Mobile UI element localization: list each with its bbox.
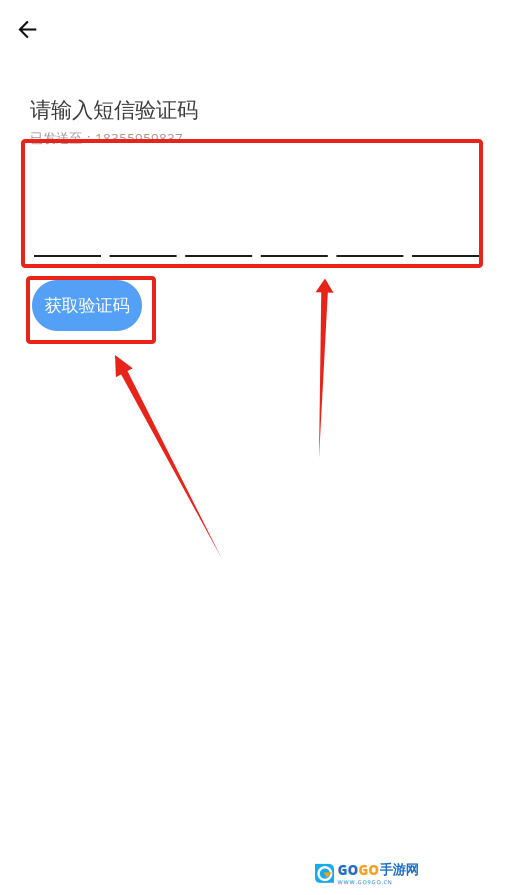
- staticText: GO: [358, 861, 379, 879]
- staticText: W W W . G O 9 G O . C N: [337, 879, 391, 886]
- button[interactable]: 获取验证码: [32, 280, 142, 331]
- staticText: 手游网: [379, 862, 418, 878]
- staticText: 获取验证码: [44, 295, 129, 316]
- staticText: 请输入短信验证码: [30, 97, 198, 123]
- staticText: 已发送至：18355959837: [30, 129, 183, 147]
- staticText: GO: [337, 861, 358, 879]
- button[interactable]: 验证码输入框: [34, 146, 479, 257]
- button[interactable]: Back: [9, 11, 47, 48]
